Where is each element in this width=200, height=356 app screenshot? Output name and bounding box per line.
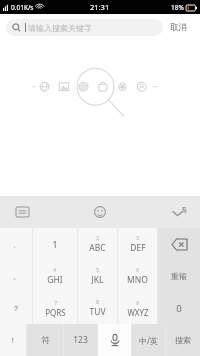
staticText: 中/英 [139, 335, 158, 346]
staticText: 、 [13, 240, 20, 249]
button[interactable]: 符 [27, 324, 63, 356]
staticText: 符 [41, 335, 50, 346]
button[interactable]: 7 [33, 292, 77, 324]
staticText: 5 [96, 266, 100, 273]
staticText: 9 [136, 299, 140, 306]
staticText: 0.01K/s [11, 3, 34, 12]
staticText: 取消 [170, 22, 187, 33]
staticText: 请输入搜索关键字 [28, 23, 92, 33]
staticText: WXYZ [127, 307, 149, 318]
button[interactable]: 中/英 [132, 324, 165, 356]
button[interactable]: 123 [64, 324, 97, 356]
button[interactable]: 2 [78, 228, 117, 260]
staticText: DEF [130, 242, 146, 254]
button[interactable]: 9 [118, 292, 157, 324]
staticText: 。 [13, 272, 20, 281]
button[interactable]: 3 [118, 228, 157, 260]
staticText: 3 [136, 234, 140, 241]
staticText: GHI [47, 274, 63, 286]
staticText: PQRS [45, 307, 66, 318]
staticText: 6 [136, 266, 140, 273]
staticText: ？ [12, 304, 20, 313]
staticText: 7 [54, 299, 58, 306]
button[interactable]: 取消 [163, 18, 194, 37]
button[interactable]: ！ [0, 324, 26, 356]
staticText: 搜索 [175, 335, 191, 345]
staticText: 18% [171, 3, 184, 12]
button[interactable]: Keyboard layout [12, 203, 33, 221]
staticText: JKL [91, 274, 104, 286]
staticText: 21:31 [90, 2, 110, 12]
staticText: TUV [89, 306, 106, 318]
staticText: 4 [53, 266, 57, 273]
button[interactable]: Backspace [158, 228, 200, 260]
button[interactable]: 6 [118, 260, 157, 292]
staticText: 123 [73, 334, 88, 346]
staticText: 1 [52, 238, 58, 251]
button[interactable]: 搜索 [166, 324, 200, 356]
button[interactable]: 重输 [158, 260, 200, 292]
button[interactable]: Hide keyboard [168, 203, 190, 222]
button[interactable]: 请输入搜索关键字 [6, 19, 163, 36]
staticText: 0 [176, 302, 182, 315]
staticText: 8 [96, 298, 100, 305]
button[interactable]: Voice input [98, 324, 131, 356]
staticText: MNO [127, 274, 148, 286]
button[interactable]: Emoji [90, 202, 110, 222]
staticText: ！ [9, 336, 17, 345]
button[interactable]: 5 [78, 260, 117, 292]
button[interactable]: 0 [158, 292, 200, 324]
button[interactable]: 4 [33, 260, 77, 292]
staticText: 2 [96, 234, 100, 241]
button[interactable]: ？ [0, 292, 32, 324]
button[interactable]: 1 [33, 228, 77, 260]
staticText: ABC [89, 242, 106, 254]
button[interactable]: 8 [78, 292, 117, 324]
staticText: 重输 [171, 271, 187, 281]
